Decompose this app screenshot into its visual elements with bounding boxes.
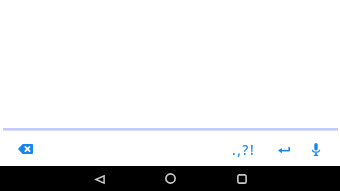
- button[interactable]: Voice input: [302, 135, 330, 163]
- button[interactable]: Backspace: [9, 134, 41, 164]
- staticText: .,?!: [232, 141, 256, 159]
- button[interactable]: .,?!: [228, 136, 260, 164]
- button[interactable]: Recent apps: [230, 166, 254, 191]
- button[interactable]: Back: [88, 167, 112, 191]
- button[interactable]: Home: [158, 166, 182, 191]
- button[interactable]: Enter: [270, 135, 298, 163]
